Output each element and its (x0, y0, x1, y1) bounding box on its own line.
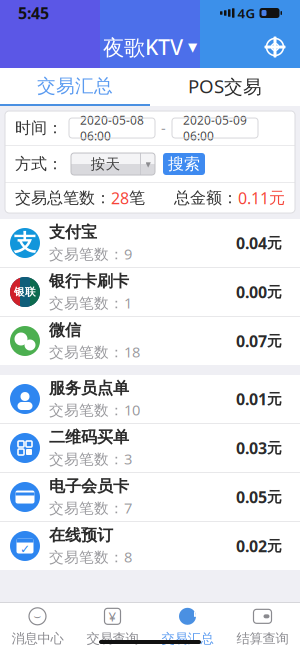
staticText: 交易汇总 (161, 630, 213, 647)
button[interactable]: 2020-05-08 06:00 (69, 118, 155, 138)
staticText: POS交易 (188, 74, 262, 98)
staticText: 交易笔数：1 (49, 293, 132, 313)
staticText: 电子会员卡 (49, 476, 129, 496)
staticText: 元 (267, 537, 282, 555)
staticText: 元 (267, 488, 282, 506)
staticText: 按天 (90, 155, 120, 173)
staticText: 28 (111, 187, 129, 209)
staticText: 交易笔数：9 (49, 244, 132, 264)
staticText: 交易笔数：10 (49, 400, 140, 420)
staticText: 0.05 (236, 486, 267, 508)
staticText: 交易笔数：8 (49, 547, 132, 567)
button[interactable]: 设置 (258, 30, 292, 64)
button[interactable]: 2020-05-09 06:00 (172, 118, 258, 138)
staticText: 元 (267, 439, 282, 457)
staticText: 总金额： (174, 188, 238, 208)
staticText: 2020-05-08 06:00 (80, 112, 144, 144)
staticText: 0.01 (236, 388, 267, 410)
staticText: 微信 (49, 320, 81, 340)
staticText: 二维码买单 (49, 427, 129, 447)
button[interactable]: 支 (0, 219, 300, 267)
staticText: 消息中心 (11, 630, 63, 647)
staticText: 结算查询 (236, 630, 288, 647)
staticText: 在线预订 (49, 525, 113, 545)
staticText: 元 (267, 234, 282, 252)
staticText: ✓ (20, 542, 30, 556)
staticText: - (161, 118, 166, 138)
staticText: 交易笔数：7 (49, 498, 132, 518)
button[interactable]: ¥ (75, 603, 150, 649)
staticText: 方式： (15, 154, 63, 174)
staticText: 时间： (15, 118, 63, 138)
staticText: 交易查询 (86, 630, 138, 647)
staticText: 4G (237, 4, 255, 22)
staticText: 交易笔数：18 (49, 342, 140, 362)
staticText: 支付宝 (49, 222, 97, 242)
button[interactable]: 二维码买单 (0, 424, 300, 472)
staticText: 交易汇总 (37, 74, 113, 97)
button[interactable]: 银联 (0, 268, 300, 316)
staticText: ⌣ (33, 610, 41, 622)
staticText: 交易总笔数： (15, 188, 111, 208)
staticText: 2020-05-09 06:00 (183, 112, 247, 144)
staticText: 元 (269, 188, 285, 208)
staticText: 交易笔数：3 (49, 449, 132, 469)
staticText: ▼ (188, 40, 197, 54)
button[interactable]: 搜索 (163, 153, 205, 175)
staticText: 支 (13, 229, 36, 257)
button[interactable]: 交易汇总 (0, 68, 150, 106)
staticText: ▾ (145, 158, 150, 170)
staticText: 0.03 (236, 437, 267, 459)
staticText: 元 (267, 332, 282, 350)
button[interactable]: 电子会员卡 (0, 473, 300, 521)
staticText: 搜索 (168, 154, 200, 174)
staticText: 0.00 (236, 281, 267, 303)
button[interactable]: 服务员点单 (0, 375, 300, 423)
button[interactable]: 按天 (71, 153, 155, 175)
staticText: 元 (267, 283, 282, 301)
staticText: 银联 (14, 285, 36, 298)
staticText: 0.07 (236, 330, 267, 352)
button[interactable]: 结算查询 (225, 603, 300, 649)
staticText: 夜歌KTV (103, 33, 183, 61)
staticText: 5:45 (18, 2, 49, 24)
staticText: ¥ (108, 607, 116, 625)
staticText: 0.02 (236, 535, 267, 557)
staticText: 服务员点单 (49, 378, 129, 398)
button[interactable]: ✓ (0, 522, 300, 570)
staticText: 0.11 (238, 187, 269, 209)
button[interactable]: 微信 (0, 317, 300, 365)
staticText: 笔 (129, 188, 145, 208)
button[interactable]: POS交易 (150, 68, 300, 106)
button[interactable]: 交易汇总 (150, 603, 225, 649)
staticText: 元 (267, 390, 282, 408)
staticText: 0.04 (236, 232, 267, 254)
staticText: 银行卡刷卡 (49, 271, 129, 291)
button[interactable]: ⌣ (0, 603, 75, 649)
